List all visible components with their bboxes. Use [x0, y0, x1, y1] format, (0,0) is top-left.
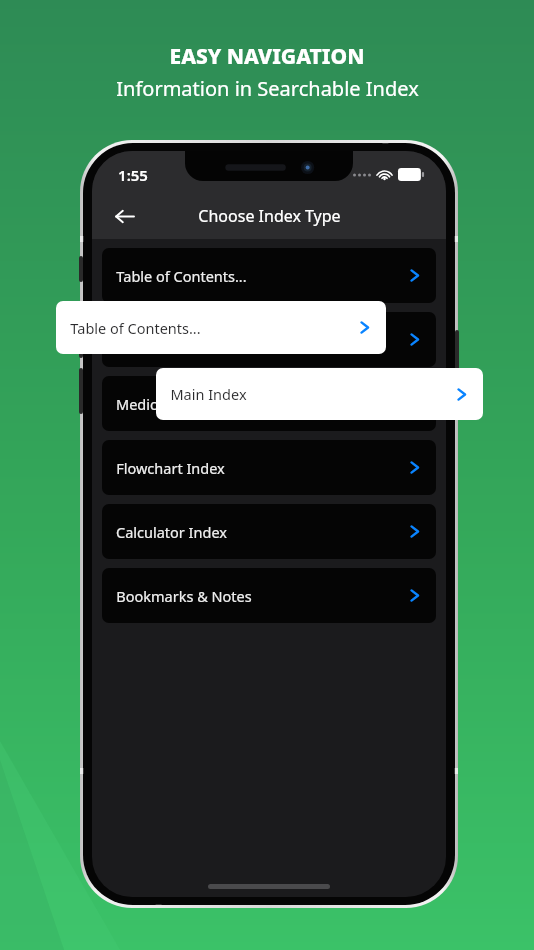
- staticText: Calculator Index: [116, 522, 227, 542]
- button[interactable]: Main Index: [156, 368, 483, 420]
- button[interactable]: Back: [102, 194, 146, 238]
- button[interactable]: Medical Index: [102, 376, 436, 431]
- staticText: Choose Index Type: [198, 205, 341, 227]
- button[interactable]: Bookmarks & Notes: [102, 568, 436, 623]
- staticText: Medical Index: [116, 394, 211, 414]
- staticText: Flowchart Index: [116, 458, 225, 478]
- button[interactable]: Calculator Index: [102, 504, 436, 559]
- staticText: Main Index: [170, 384, 247, 404]
- staticText: EASY NAVIGATION: [169, 42, 365, 71]
- button[interactable]: [102, 312, 436, 367]
- staticText: Bookmarks & Notes: [116, 586, 252, 606]
- staticText: 1:55: [118, 165, 148, 185]
- staticText: Table of Contents...: [70, 318, 201, 338]
- button[interactable]: Table of Contents...: [56, 301, 386, 354]
- staticText: Table of Contents...: [116, 266, 247, 286]
- button[interactable]: Flowchart Index: [102, 440, 436, 495]
- button[interactable]: Table of Contents...: [102, 248, 436, 303]
- staticText: Information in Searchable Index: [116, 75, 419, 102]
